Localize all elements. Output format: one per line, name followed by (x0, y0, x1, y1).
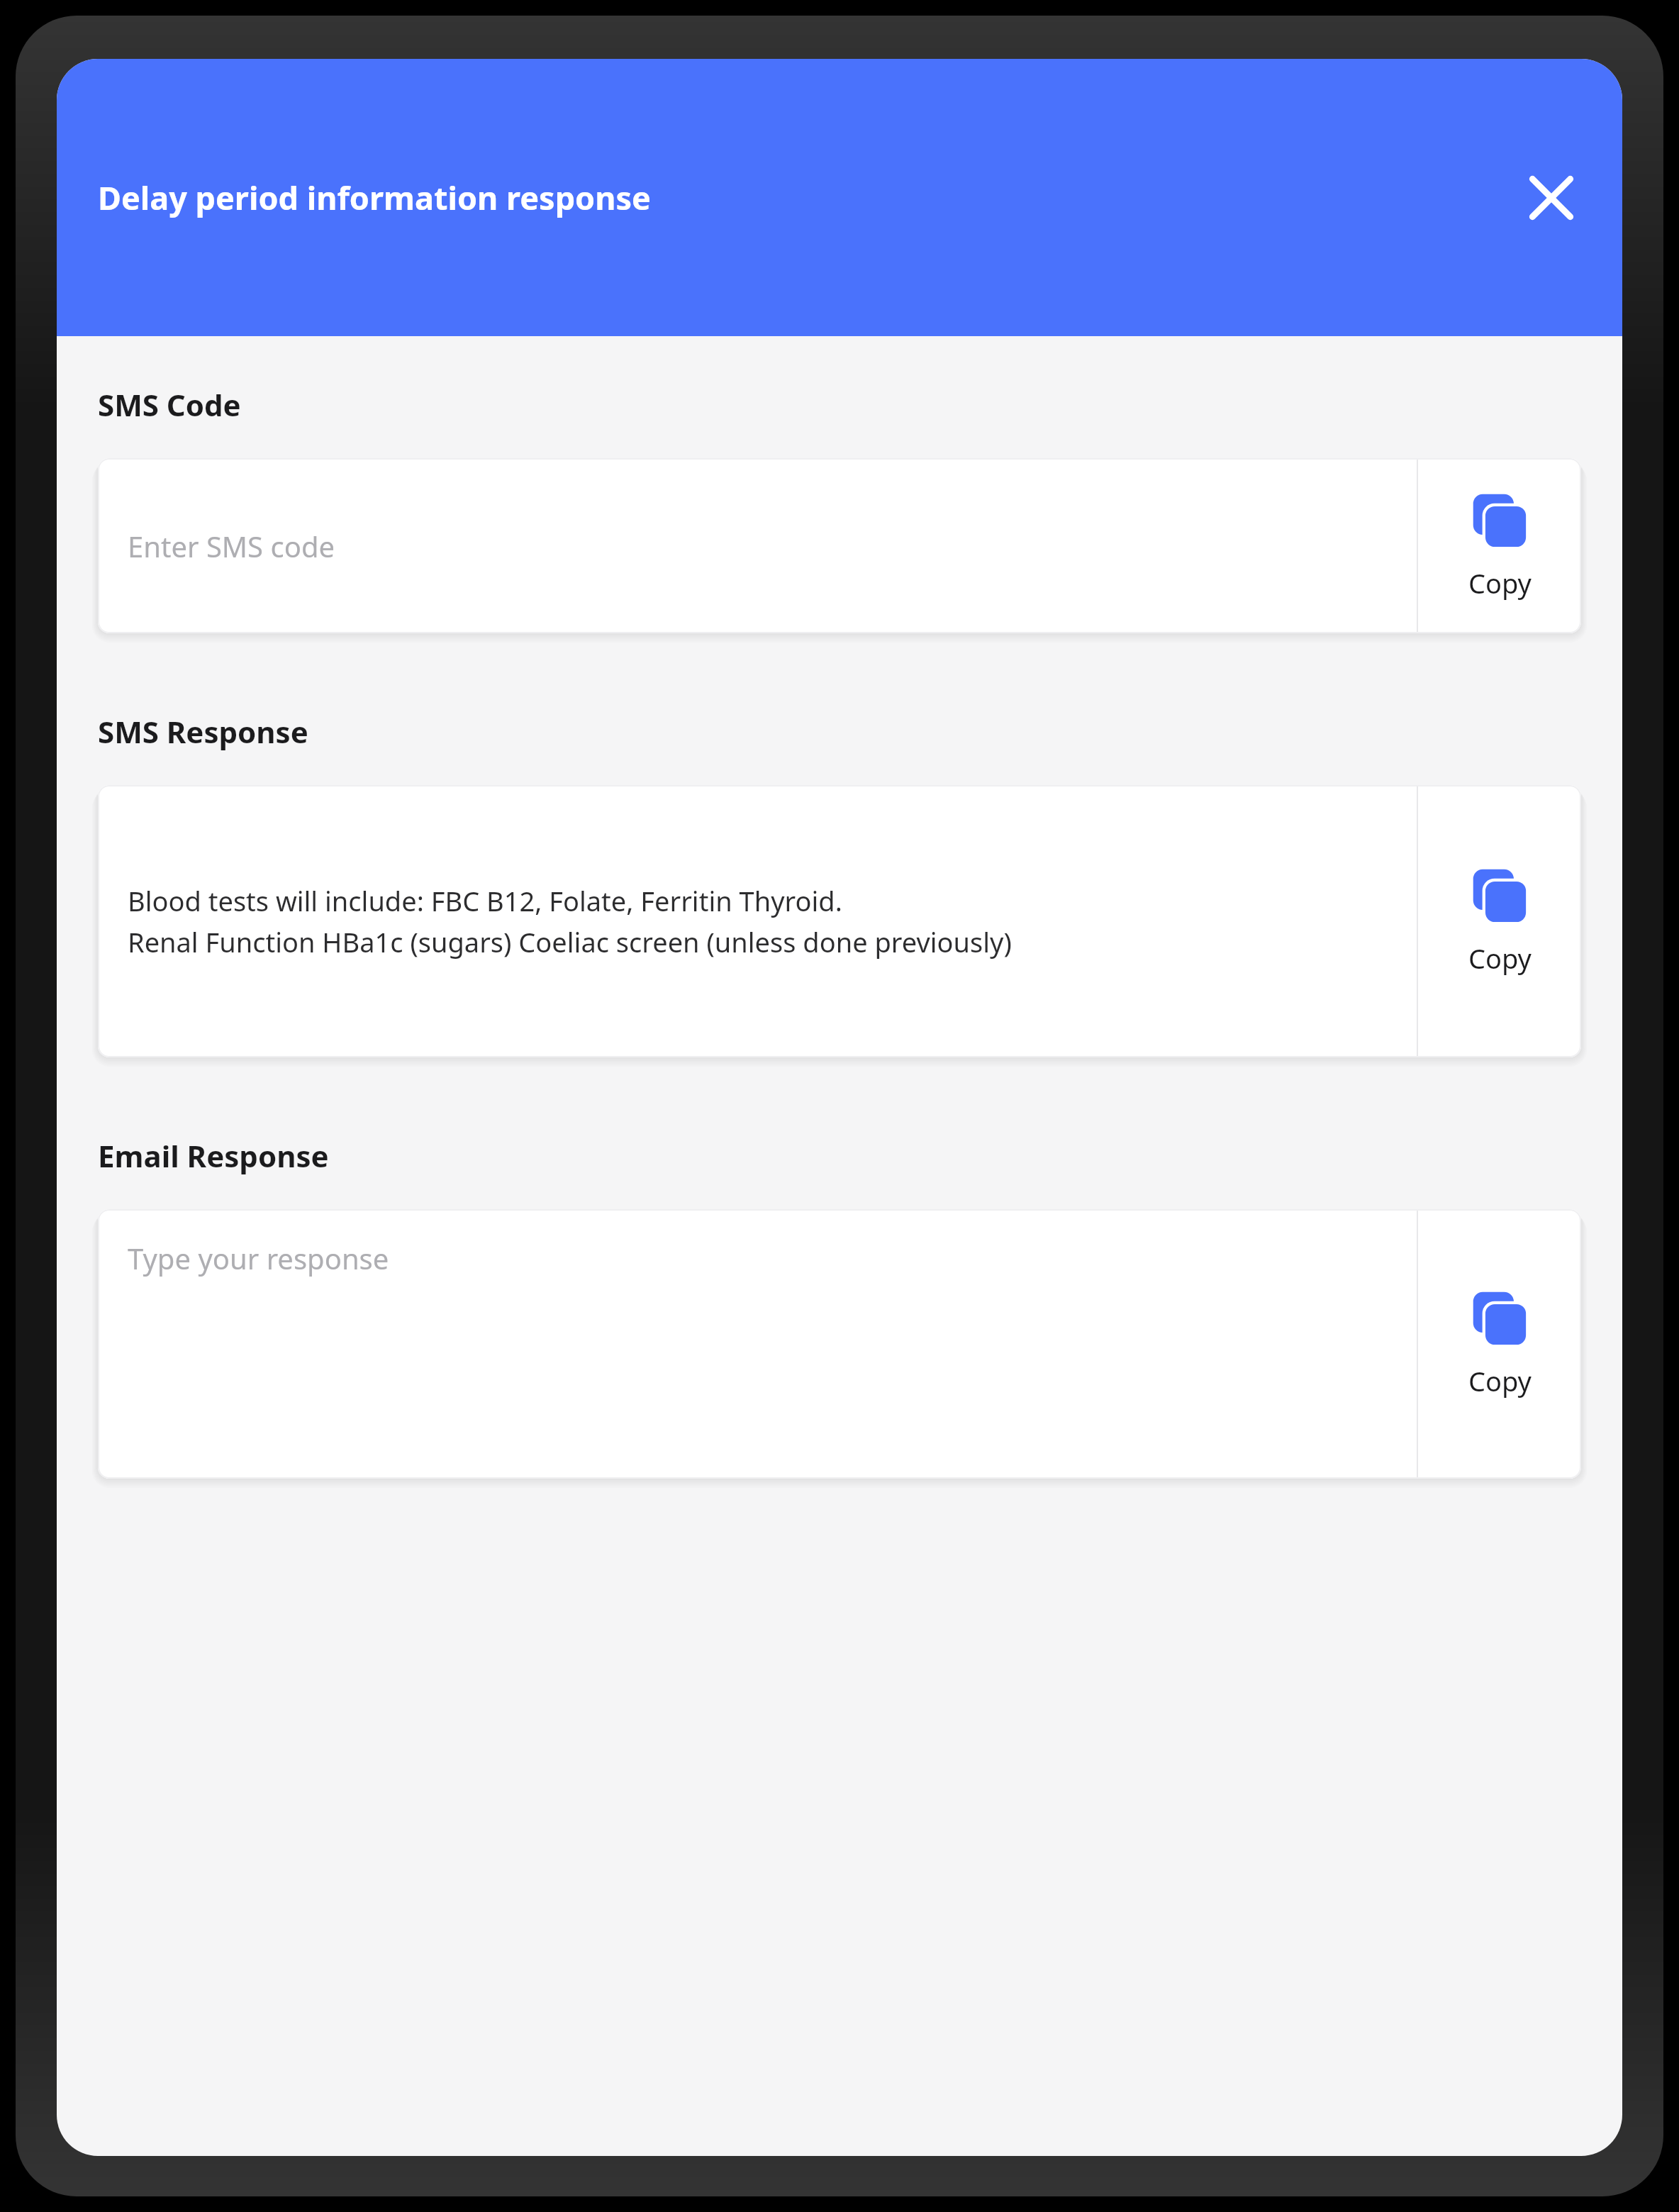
staticText: Copy (1468, 940, 1532, 977)
staticText: Copy (1468, 565, 1532, 601)
staticText: Email Response (98, 1135, 329, 1176)
button[interactable]: Copy (1418, 1209, 1581, 1479)
button[interactable]: Copy (1418, 458, 1581, 633)
button[interactable]: Blood tests will include: FBC B12, Folat… (98, 785, 1417, 1057)
staticText: Copy (1468, 1362, 1532, 1399)
staticText: Enter SMS code (128, 527, 335, 565)
staticText: SMS Response (98, 711, 308, 752)
staticText: Blood tests will include: FBC B12, Folat… (128, 882, 842, 919)
staticText: SMS Code (98, 384, 241, 425)
staticText: Type your response (128, 1239, 389, 1277)
staticText: Delay period information response (98, 176, 651, 219)
button[interactable]: Type your response (98, 1209, 1417, 1479)
staticText: Renal Function HBa1c (sugars) Coeliac sc… (128, 923, 1012, 960)
button[interactable]: Close (1515, 161, 1588, 235)
button[interactable]: Enter SMS code (98, 458, 1417, 633)
button[interactable]: Copy (1418, 785, 1581, 1057)
